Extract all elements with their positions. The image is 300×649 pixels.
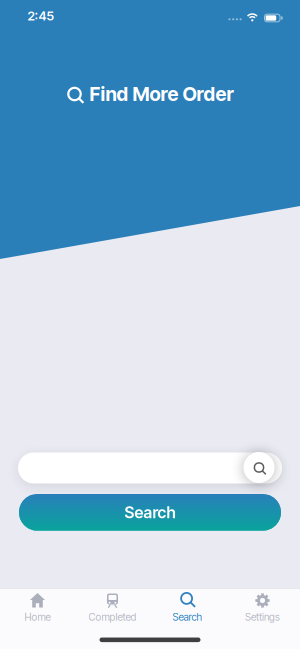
staticText: Settings [245,611,280,623]
staticText: Search [124,503,175,522]
button[interactable]: Search [19,494,281,531]
staticText: Completed [88,611,136,623]
button[interactable]: Search [150,588,225,628]
button[interactable]: Settings [225,588,300,628]
staticText: Find More Order [89,82,233,106]
button[interactable]: Home [0,588,75,628]
staticText: Search [172,611,202,623]
button[interactable]: Completed [75,588,150,628]
button[interactable]: Search text field [18,451,282,484]
staticText: Home [24,611,50,623]
staticText: 2:45 [27,8,54,24]
